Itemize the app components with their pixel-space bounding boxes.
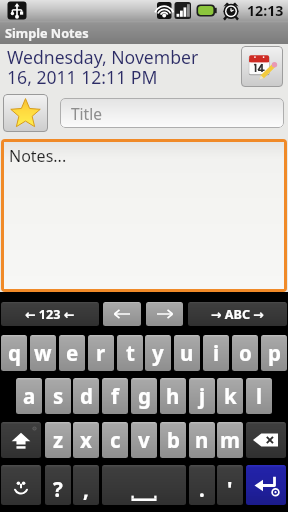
button[interactable]: u (174, 335, 200, 371)
button[interactable]: t (117, 335, 143, 371)
staticText: a (23, 382, 36, 410)
staticText: y (152, 339, 164, 367)
button[interactable]: a (16, 378, 42, 414)
button[interactable]: Emoji (1, 465, 41, 505)
staticText: Title (71, 103, 102, 124)
staticText: p (268, 339, 281, 367)
staticText: q (8, 339, 21, 367)
other: Move left (103, 302, 141, 326)
staticText: e (66, 339, 79, 367)
staticText: n (195, 426, 209, 454)
button[interactable]: . (189, 465, 215, 505)
button[interactable]: Shift (1, 422, 41, 458)
staticText: c (110, 426, 121, 454)
staticText: w (34, 339, 52, 367)
button[interactable]: b (160, 422, 186, 458)
staticText: 12:13 (247, 1, 284, 20)
button[interactable]: → ABC → (188, 302, 287, 326)
button[interactable]: m (217, 422, 243, 458)
staticText: m (220, 426, 240, 454)
button[interactable]: ← 123 ← (1, 302, 99, 326)
button[interactable]: Move left (103, 302, 141, 326)
button[interactable]: Notes... (4, 142, 284, 289)
staticText: h (166, 382, 180, 410)
button[interactable]: Title (60, 98, 284, 128)
button[interactable]: q (1, 335, 27, 371)
staticText: b (167, 426, 180, 454)
staticText: j (199, 382, 206, 410)
button[interactable]: w (30, 335, 56, 371)
staticText: z (53, 426, 64, 454)
staticText: Wednesday, November 16, 2011 12:11 PM (7, 45, 212, 89)
button[interactable]: o (232, 335, 258, 371)
button[interactable]: Enter (246, 465, 286, 505)
button[interactable]: ' (217, 465, 243, 505)
staticText: f (111, 382, 119, 410)
staticText: → ABC → (211, 306, 264, 323)
other: Shift (1, 422, 41, 458)
staticText: v (138, 426, 150, 454)
button[interactable]: l (246, 378, 272, 414)
button[interactable]: Backspace (246, 422, 286, 458)
button[interactable]: e (59, 335, 85, 371)
button[interactable]: x (73, 422, 99, 458)
button[interactable]: p (261, 335, 287, 371)
staticText: u (180, 339, 194, 367)
staticText: d (80, 382, 93, 410)
other: Emoji (1, 465, 41, 505)
staticText: k (224, 382, 237, 410)
button[interactable]: Space (102, 465, 186, 505)
button[interactable]: h (160, 378, 186, 414)
button[interactable]: f (102, 378, 128, 414)
staticText: g (138, 382, 151, 410)
button[interactable]: j (189, 378, 215, 414)
staticText: o (239, 339, 252, 367)
staticText: Notes... (9, 145, 67, 167)
button[interactable]: Move right (146, 302, 183, 326)
button[interactable]: s (45, 378, 71, 414)
staticText: , (83, 475, 89, 503)
staticText: ' (227, 475, 233, 503)
other: Enter (246, 465, 286, 505)
staticText: i (213, 339, 220, 367)
staticText: ? (53, 475, 63, 503)
staticText: l (256, 382, 263, 410)
other: Backspace (246, 422, 286, 458)
button[interactable]: c (102, 422, 128, 458)
staticText: r (96, 339, 106, 367)
button[interactable]: z (45, 422, 71, 458)
other: Space (102, 465, 186, 505)
staticText: t (126, 339, 135, 367)
other: Move right (146, 302, 183, 326)
staticText: ← 123 ← (25, 306, 75, 323)
staticText: x (80, 426, 92, 454)
button[interactable]: d (73, 378, 99, 414)
button[interactable]: i (203, 335, 229, 371)
button[interactable]: ? (45, 465, 71, 505)
button[interactable]: v (131, 422, 157, 458)
button[interactable]: , (73, 465, 99, 505)
staticText: s (53, 382, 64, 410)
staticText: . (199, 475, 205, 503)
button[interactable]: Favorite (3, 94, 48, 132)
button[interactable]: y (145, 335, 171, 371)
button[interactable]: r (88, 335, 114, 371)
button[interactable]: k (217, 378, 243, 414)
staticText: Simple Notes (5, 24, 89, 41)
button[interactable]: g (131, 378, 157, 414)
button[interactable]: Pick date (241, 46, 283, 87)
button[interactable]: n (189, 422, 215, 458)
